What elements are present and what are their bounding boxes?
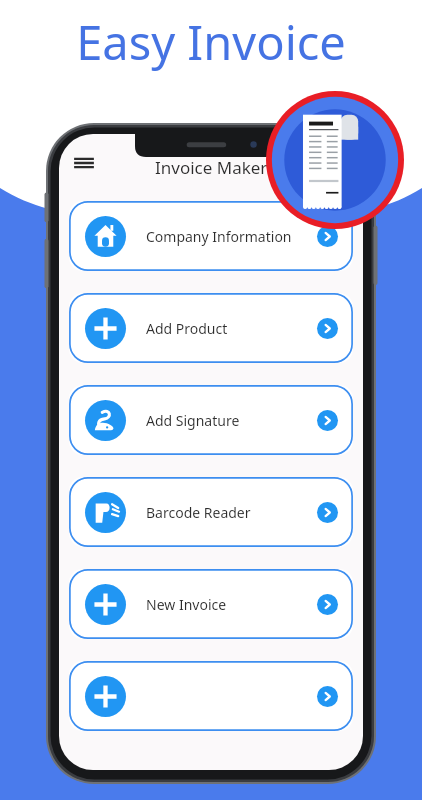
button[interactable]: Menu bbox=[71, 150, 97, 176]
button[interactable]: Company Information bbox=[69, 201, 353, 271]
staticText: Company Information bbox=[146, 227, 292, 246]
button[interactable]: Add Signature bbox=[69, 385, 353, 455]
button[interactable] bbox=[69, 661, 353, 731]
staticText: Easy Invoice bbox=[76, 10, 346, 74]
staticText: Add Signature bbox=[146, 411, 240, 430]
button[interactable]: Add Product bbox=[69, 293, 353, 363]
button[interactable]: New Invoice bbox=[69, 569, 353, 639]
staticText: New Invoice bbox=[146, 595, 227, 614]
staticText: Add Product bbox=[146, 319, 228, 338]
button[interactable]: Barcode Reader bbox=[69, 477, 353, 547]
staticText: Barcode Reader bbox=[146, 503, 251, 522]
staticText: Invoice Maker bbox=[155, 156, 268, 179]
